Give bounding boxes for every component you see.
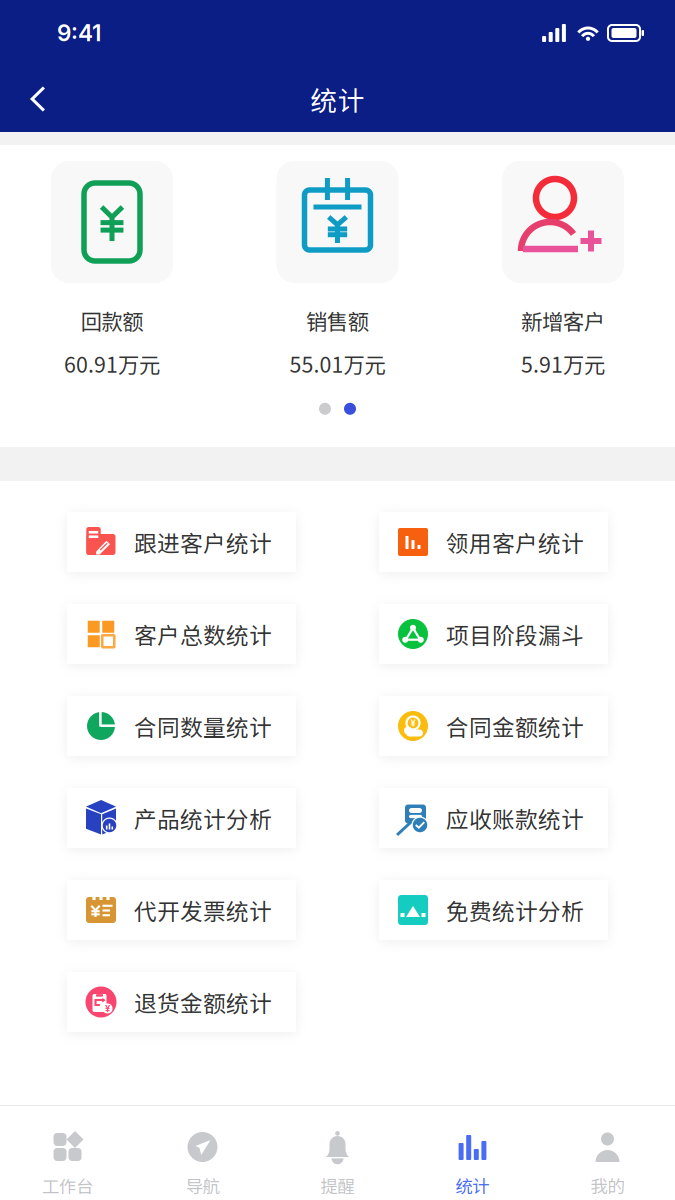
staticText: 工作台 xyxy=(42,1173,93,1198)
staticText: 应收账款统计 xyxy=(446,802,584,834)
staticText: 5.91万元 xyxy=(521,348,605,379)
staticText: 我的 xyxy=(590,1173,624,1198)
staticText: 9:41 xyxy=(57,19,101,47)
button[interactable]: ¥ xyxy=(379,696,608,756)
button[interactable]: 导航 xyxy=(135,1106,270,1200)
button[interactable]: 回款额 xyxy=(32,161,192,379)
button[interactable]: 领用客户统计 xyxy=(379,512,608,572)
button[interactable]: 跟进客户统计 xyxy=(67,512,296,572)
button[interactable]: 代开发票统计 xyxy=(67,880,296,940)
staticText: 跟进客户统计 xyxy=(134,526,272,558)
button[interactable]: 免费统计分析 xyxy=(379,880,608,940)
staticText: 60.91万元 xyxy=(64,348,160,379)
button[interactable]: 我的 xyxy=(540,1106,675,1200)
staticText: 代开发票统计 xyxy=(134,894,272,926)
staticText: 统计 xyxy=(310,80,364,118)
staticText: ¥ xyxy=(105,1003,110,1014)
button[interactable]: 提醒 xyxy=(270,1106,405,1200)
button[interactable]: 产品统计分析 xyxy=(67,788,296,848)
staticText: 领用客户统计 xyxy=(446,526,584,558)
button[interactable]: 统计 xyxy=(405,1106,540,1200)
staticText: 退货金额统计 xyxy=(134,986,272,1018)
button[interactable]: 应收账款统计 xyxy=(379,788,608,848)
staticText: 产品统计分析 xyxy=(134,802,272,834)
staticText: 合同数量统计 xyxy=(134,710,272,742)
staticText: 统计 xyxy=(455,1173,489,1198)
button[interactable]: Back xyxy=(7,68,69,130)
button[interactable]: 客户总数统计 xyxy=(67,604,296,664)
staticText: 项目阶段漏斗 xyxy=(446,618,584,650)
staticText: 合同金额统计 xyxy=(446,710,584,742)
staticText: ¥ xyxy=(410,717,415,729)
button[interactable]: 合同数量统计 xyxy=(67,696,296,756)
staticText: 免费统计分析 xyxy=(446,894,584,926)
button[interactable]: 项目阶段漏斗 xyxy=(379,604,608,664)
staticText: 销售额 xyxy=(306,305,369,336)
staticText: 提醒 xyxy=(320,1173,354,1198)
button[interactable]: ¥ xyxy=(67,972,296,1032)
staticText: 客户总数统计 xyxy=(134,618,272,650)
button[interactable]: 新增客户 xyxy=(483,161,643,379)
staticText: 导航 xyxy=(185,1173,219,1198)
button[interactable]: 销售额 xyxy=(257,161,417,379)
staticText: 55.01万元 xyxy=(289,348,385,379)
button[interactable]: 工作台 xyxy=(0,1106,135,1200)
staticText: 回款额 xyxy=(80,305,143,336)
staticText: 新增客户 xyxy=(521,305,605,336)
